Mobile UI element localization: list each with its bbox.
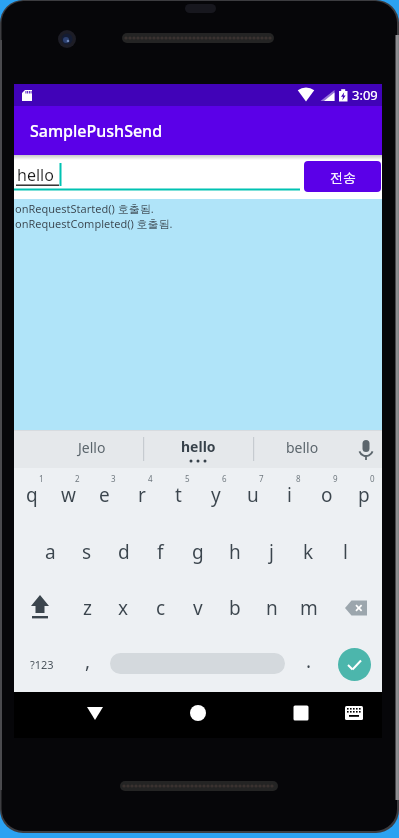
button[interactable]: e [86,468,123,524]
staticText: u [247,482,259,508]
staticText: z [83,595,92,621]
staticText: 8 [296,473,301,484]
button[interactable] [136,692,259,738]
staticText: 4 [148,473,153,484]
button[interactable] [259,692,382,738]
staticText: g [192,539,204,565]
staticText: v [193,595,203,621]
button[interactable] [327,580,382,636]
staticText: o [321,482,333,508]
button[interactable]: u [234,468,271,524]
staticText: 전송 [330,169,356,185]
staticText: r [138,482,146,508]
staticText: n [266,595,278,621]
staticText: 5 [185,473,190,484]
staticText: p [358,482,370,508]
button[interactable]: n [253,580,290,636]
staticText: 3:09 [352,86,378,104]
staticText: h [229,539,241,565]
button[interactable] [14,580,69,636]
staticText: f [157,539,164,565]
button[interactable]: v [179,580,216,636]
staticText: b [229,595,241,621]
button[interactable]: z [69,580,105,636]
button[interactable]: y [197,468,234,524]
button[interactable]: q [14,468,50,524]
button[interactable]: s [68,524,105,580]
button[interactable]: m [290,580,327,636]
button[interactable]: i [271,468,308,524]
staticText: 6 [222,473,227,484]
button[interactable]: x [105,580,142,636]
button[interactable]: k [290,524,327,580]
staticText: i [287,482,292,508]
button[interactable]: r [123,468,160,524]
button[interactable]: 전송 [304,161,381,192]
staticText: l [343,539,348,565]
button[interactable]: d [105,524,142,580]
staticText: k [303,539,314,565]
staticText: ?123 [30,657,54,672]
staticText: y [211,482,221,508]
button[interactable]: j [253,524,290,580]
staticText: t [175,482,182,508]
staticText: onRequestCompleted() 호출됨. [15,216,173,231]
staticText: 9 [333,473,338,484]
button[interactable]: g [179,524,216,580]
button[interactable]: w [50,468,86,524]
button[interactable]: . [290,636,327,692]
button[interactable]: bello [286,438,319,457]
staticText: 3 [111,473,116,484]
button[interactable]: ?123 [14,636,69,692]
button[interactable]: l [327,524,364,580]
button[interactable] [14,692,136,738]
staticText: q [26,482,38,508]
button[interactable]: hello [181,437,216,456]
staticText: SamplePushSend [30,120,163,142]
staticText: m [300,595,318,621]
staticText: . [306,648,312,674]
button[interactable]: f [142,524,179,580]
staticText: 0 [370,473,375,484]
button[interactable]: b [216,580,253,636]
button[interactable]: SamplePushSend [14,106,382,155]
button[interactable] [110,653,285,674]
staticText: c [156,595,166,621]
staticText: 1 [39,473,44,484]
staticText: s [82,539,92,565]
button[interactable]: o [308,468,345,524]
button[interactable]: h [216,524,253,580]
staticText: , [85,648,91,674]
button[interactable]: p [345,468,382,524]
staticText: hello [17,164,54,186]
button[interactable]: a [32,524,68,580]
staticText: d [118,539,130,565]
staticText: j [269,539,274,565]
button[interactable]: Jello [78,438,106,457]
staticText: x [118,595,129,621]
staticText: onRequestStarted() 호출됨. [15,201,154,216]
button[interactable]: c [142,580,179,636]
button[interactable]: , [69,636,106,692]
staticText: w [61,482,76,508]
staticText: 7 [259,473,264,484]
staticText: 2 [75,473,80,484]
button[interactable]: t [160,468,197,524]
button[interactable] [327,636,382,692]
staticText: a [45,539,56,565]
staticText: e [99,482,110,508]
